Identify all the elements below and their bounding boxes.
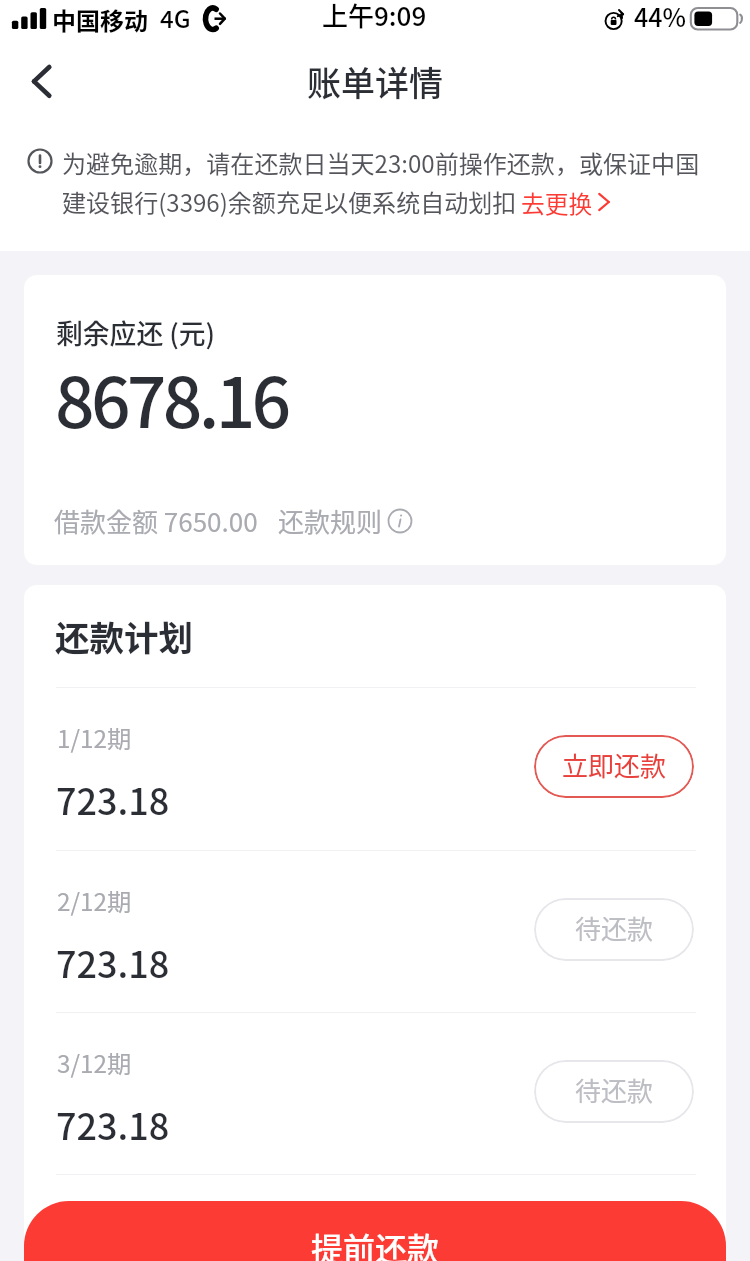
staticText: 1/12期 [57, 720, 132, 755]
staticText: 待还款 [575, 909, 654, 947]
staticText: 3/12期 [57, 1045, 132, 1080]
staticText: 借款金额 7650.00 [54, 502, 258, 540]
staticText: 剩余应还 (元) [56, 313, 216, 352]
staticText: 待还款 [575, 1071, 654, 1109]
button[interactable]: 还款规则 [278, 502, 412, 540]
staticText: 723.18 [56, 936, 170, 988]
staticText: 立即还款 [562, 746, 667, 784]
staticText: 还款计划 [55, 611, 193, 661]
staticText: 提前还款 [311, 1224, 440, 1261]
staticText: 上午9:09 [322, 0, 427, 34]
button[interactable]: 去更换 [521, 186, 612, 218]
staticText: 为避免逾期，请在还款日当天23:00前操作还款，或保证中国 [62, 145, 700, 180]
staticText: 723.18 [56, 773, 170, 825]
button[interactable]: 待还款 [534, 1060, 694, 1123]
staticText: 2/12期 [57, 883, 132, 918]
staticText: 8678.16 [55, 347, 288, 448]
button[interactable]: Back [6, 48, 76, 114]
staticText: 去更换 [521, 186, 593, 218]
staticText: 723.18 [56, 1098, 170, 1150]
button[interactable]: 立即还款 [534, 735, 694, 798]
staticText: 中国移动 [52, 2, 148, 37]
staticText: 44% [634, 0, 686, 34]
staticText: 还款规则 [278, 502, 383, 540]
button[interactable]: 待还款 [534, 898, 694, 961]
staticText: 账单详情 [307, 57, 443, 106]
button[interactable]: 提前还款 [24, 1201, 726, 1261]
staticText: 建设银行(3396)余额充足以便系统自动划扣 [62, 184, 517, 219]
staticText: 4G [160, 0, 191, 35]
